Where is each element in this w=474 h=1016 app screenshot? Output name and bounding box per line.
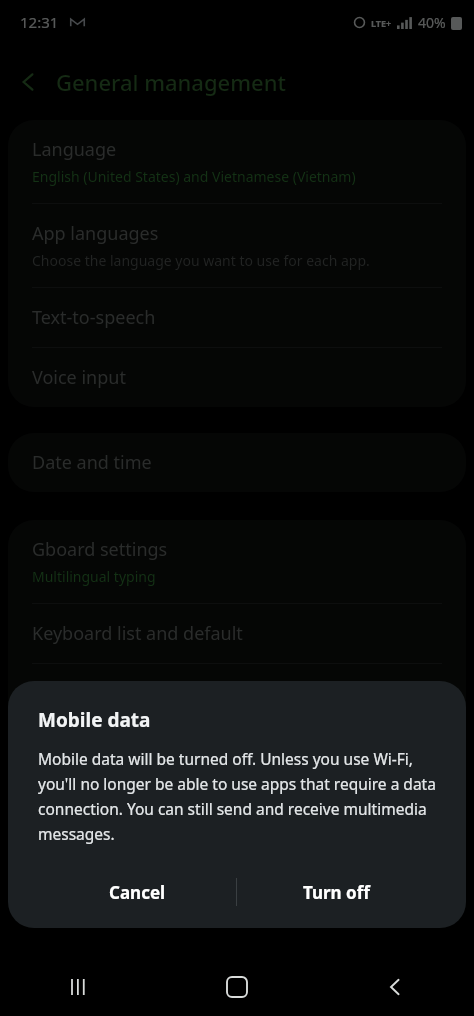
staticText: Choose the language you want to use for … [32,251,370,270]
button[interactable]: Keyboard list and default [8,604,466,663]
button[interactable]: Cancel [38,868,236,916]
staticText: App languages [32,221,159,246]
staticText: English (United States) and Vietnamese (… [32,167,356,186]
button[interactable]: Home [158,958,316,1016]
button[interactable]: Recents [0,958,158,1016]
staticText: General management [56,67,286,97]
button[interactable]: App languages [8,204,466,287]
staticText: Mobile data [38,707,151,733]
staticText: 12:31 [20,12,59,32]
button[interactable]: Back [316,958,474,1016]
staticText: Keyboard list and default [32,621,243,646]
staticText: Multilingual typing [32,567,156,586]
staticText: Text-to-speech [32,305,156,330]
staticText: Language [32,137,117,162]
button[interactable]: Language [8,120,466,203]
staticText: Gboard settings [32,537,168,562]
staticText: Turn off [303,881,370,904]
button[interactable]: Text-to-speech [8,288,466,347]
staticText: 40% [418,13,446,32]
button[interactable]: Spelling correction [8,841,466,900]
button[interactable]: Date and time [8,433,466,492]
button[interactable]: Gboard settings [8,520,466,603]
button[interactable]: Turn off [237,868,436,916]
staticText: LTE+ [371,17,392,29]
staticText: Date and time [32,450,152,475]
button[interactable]: Back [0,54,56,110]
staticText: Cancel [109,881,166,904]
staticText: Mobile data will be turned off. Unless y… [38,748,436,844]
staticText: Voice input [32,365,126,390]
button[interactable]: Voice input [8,348,466,407]
